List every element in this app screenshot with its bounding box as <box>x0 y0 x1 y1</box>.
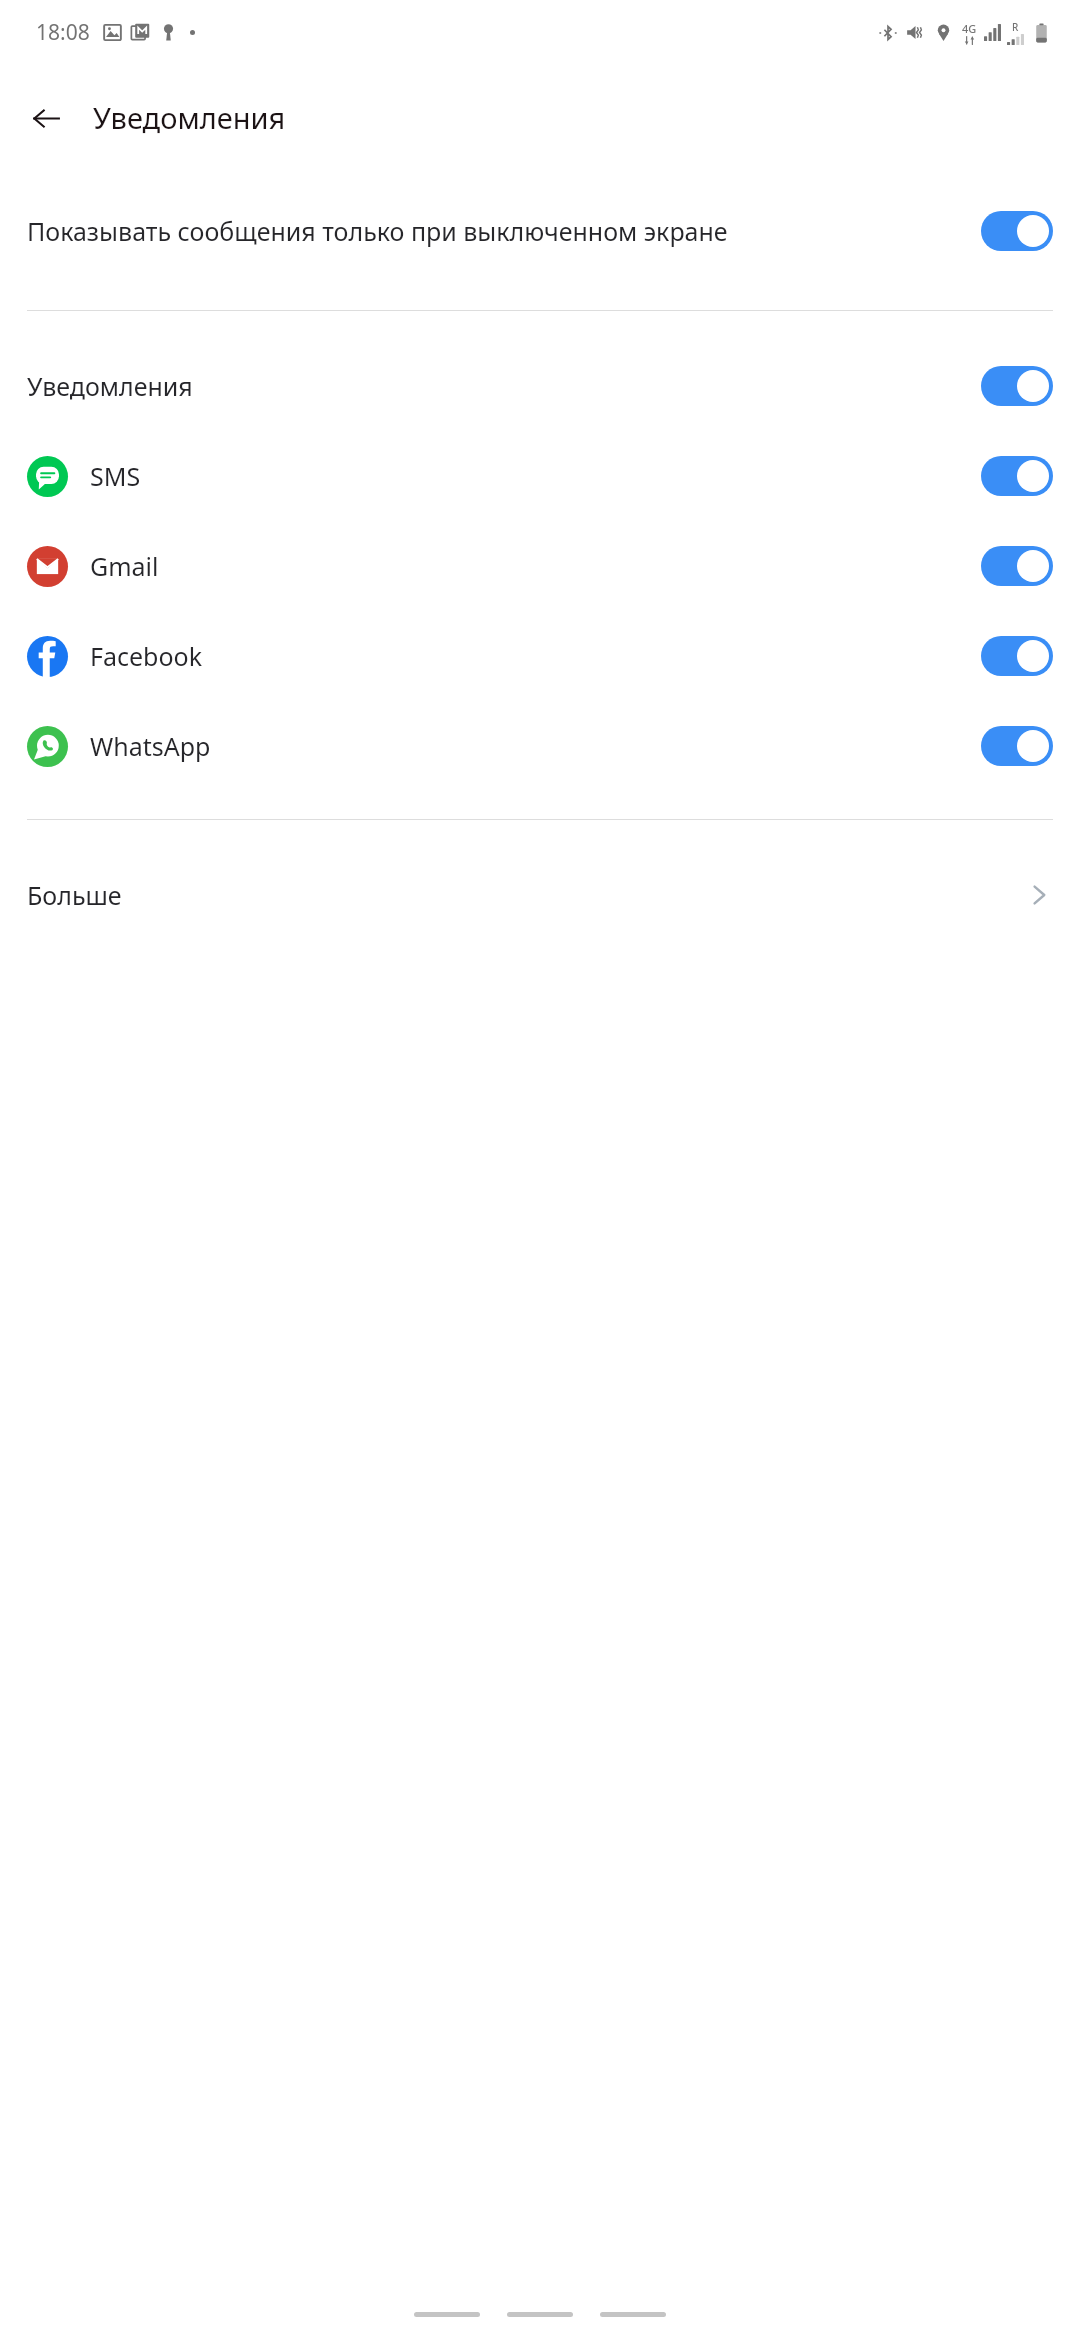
button[interactable]: Больше <box>0 865 1080 925</box>
staticText: Уведомления <box>27 369 961 403</box>
button[interactable]: Уведомления <box>0 356 1080 416</box>
staticText: Facebook <box>90 639 961 673</box>
staticText: 18:08 <box>36 18 90 47</box>
button[interactable]: Показывать сообщения только при выключен… <box>0 181 1080 281</box>
staticText: SMS <box>90 459 961 493</box>
button[interactable]: Recents <box>414 2312 480 2317</box>
button[interactable]: Home <box>507 2312 573 2317</box>
staticText: Показывать сообщения только при выключен… <box>27 214 961 248</box>
button[interactable]: Gmail <box>0 536 1080 596</box>
staticText: 4G <box>962 21 977 36</box>
button[interactable]: WhatsApp <box>0 716 1080 776</box>
staticText: Gmail <box>90 549 961 583</box>
button[interactable]: Facebook <box>0 626 1080 686</box>
button[interactable]: SMS <box>0 446 1080 506</box>
staticText: Больше <box>27 878 1028 912</box>
button[interactable]: Back <box>600 2312 666 2317</box>
staticText: Уведомления <box>93 98 286 137</box>
button[interactable]: Back <box>18 90 74 146</box>
staticText: WhatsApp <box>90 729 961 763</box>
staticText: R <box>1012 20 1019 34</box>
